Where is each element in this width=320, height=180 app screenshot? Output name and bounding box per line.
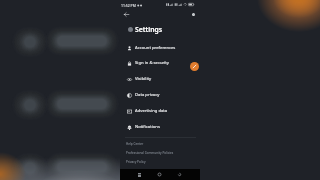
button[interactable]: Data privacy xyxy=(120,87,200,103)
staticText: Professional Community Policies xyxy=(126,151,174,155)
button[interactable]: Privacy Policy xyxy=(120,158,200,166)
button[interactable]: Notifications xyxy=(120,119,200,135)
button[interactable]: Back xyxy=(121,9,132,20)
staticText: Visibility xyxy=(135,76,152,82)
button[interactable]: Edit xyxy=(190,62,199,71)
button[interactable]: Back xyxy=(175,170,184,179)
staticText: Sign in & security xyxy=(135,60,169,66)
button[interactable]: Recent apps xyxy=(135,170,144,179)
button[interactable]: Home xyxy=(155,170,164,179)
staticText: Help Center xyxy=(126,142,144,146)
staticText: Account preferences xyxy=(135,45,176,51)
staticText: Notifications xyxy=(135,124,160,130)
button[interactable]: Visibility xyxy=(120,71,200,87)
button[interactable]: Account preferences xyxy=(120,40,200,56)
staticText: Privacy Policy xyxy=(126,160,146,164)
button[interactable]: Professional Community Policies xyxy=(120,149,200,157)
button[interactable]: Sign in & security xyxy=(120,55,200,71)
button[interactable]: Help Center xyxy=(120,140,200,148)
staticText: Data privacy xyxy=(135,92,160,98)
button[interactable]: Advertising data xyxy=(120,103,200,119)
staticText: Advertising data xyxy=(135,108,168,114)
staticText: Settings xyxy=(135,25,163,34)
button[interactable]: Help xyxy=(188,9,199,20)
staticText: 11:52 PM xyxy=(121,3,136,8)
